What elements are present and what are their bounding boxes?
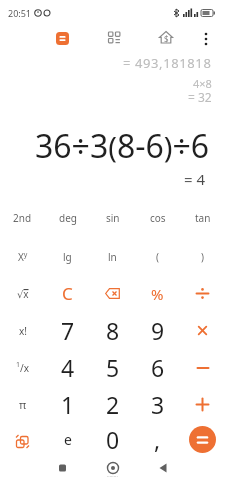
staticText: √x [17, 287, 29, 301]
button[interactable] [153, 460, 173, 480]
staticText: = 32 [188, 89, 212, 105]
button[interactable] [199, 31, 213, 49]
staticText: 4 [61, 352, 75, 383]
button[interactable] [180, 386, 225, 423]
button[interactable] [189, 426, 216, 453]
staticText: π [19, 397, 27, 412]
button[interactable]: 7 [45, 312, 90, 349]
staticText: ( [156, 250, 159, 264]
staticText: 3 [151, 389, 165, 420]
button[interactable] [103, 460, 123, 480]
staticText: Xy [18, 250, 28, 264]
button[interactable]: C [45, 275, 90, 312]
staticText: 20:51 [8, 7, 32, 19]
button[interactable] [180, 349, 225, 386]
staticText: 2 [106, 389, 120, 420]
staticText: , [154, 424, 161, 455]
button[interactable]: Xy [0, 238, 45, 275]
staticText: 8 [106, 315, 120, 346]
button[interactable]: $ [158, 30, 174, 46]
button[interactable]: x! [0, 312, 45, 349]
button[interactable] [52, 460, 72, 480]
button[interactable] [0, 423, 45, 460]
staticText: = 493,181818 [123, 54, 212, 72]
staticText: cos [150, 211, 166, 225]
button[interactable] [107, 31, 121, 45]
button[interactable] [180, 312, 225, 349]
staticText: C [62, 282, 73, 305]
button[interactable]: 8 [90, 312, 135, 349]
button[interactable]: 1/x [0, 349, 45, 386]
staticText: $ [164, 33, 169, 44]
button[interactable]: 2 [90, 386, 135, 423]
button[interactable]: , [135, 423, 180, 460]
staticText: lg [63, 250, 72, 264]
button[interactable] [56, 32, 69, 45]
button[interactable]: π [0, 386, 45, 423]
button[interactable] [180, 423, 225, 460]
button[interactable]: ln [90, 238, 135, 275]
button[interactable]: 1 [45, 386, 90, 423]
button[interactable] [90, 275, 135, 312]
staticText: % [151, 284, 164, 304]
staticText: 7 [61, 315, 75, 346]
staticText: 6 [151, 352, 165, 383]
staticText: tan [195, 211, 211, 225]
staticText: ) [201, 250, 204, 264]
button[interactable]: 3 [135, 386, 180, 423]
staticText: 1/x [16, 360, 30, 375]
button[interactable]: ) [180, 238, 225, 275]
button[interactable]: lg [45, 238, 90, 275]
button[interactable]: e [45, 423, 90, 460]
button[interactable]: √x [0, 275, 45, 312]
staticText: 2nd [13, 211, 32, 225]
button[interactable]: 9 [135, 312, 180, 349]
staticText: 36÷3(8-6)÷6 [35, 124, 210, 168]
button[interactable]: tan [180, 199, 225, 236]
button[interactable]: cos [135, 199, 180, 236]
button[interactable]: 0 [90, 423, 135, 460]
staticText: e [64, 430, 72, 449]
staticText: 0 [106, 424, 120, 455]
button[interactable]: 4 [45, 349, 90, 386]
staticText: 4×8 [193, 76, 212, 91]
staticText: deg [59, 211, 77, 225]
button[interactable]: 5 [90, 349, 135, 386]
button[interactable]: 2nd [0, 199, 45, 236]
staticText: 1 [61, 389, 75, 420]
button[interactable]: deg [45, 199, 90, 236]
button[interactable]: 6 [135, 349, 180, 386]
button[interactable] [180, 275, 225, 312]
button[interactable]: sin [90, 199, 135, 236]
staticText: x! [19, 324, 27, 338]
staticText: ········ [107, 473, 118, 480]
staticText: 5 [106, 352, 120, 383]
staticText: 9 [151, 315, 165, 346]
staticText: = 4 [184, 169, 206, 189]
button[interactable]: ( [135, 238, 180, 275]
staticText: sin [106, 211, 120, 225]
button[interactable]: % [135, 275, 180, 312]
staticText: ln [108, 250, 117, 264]
